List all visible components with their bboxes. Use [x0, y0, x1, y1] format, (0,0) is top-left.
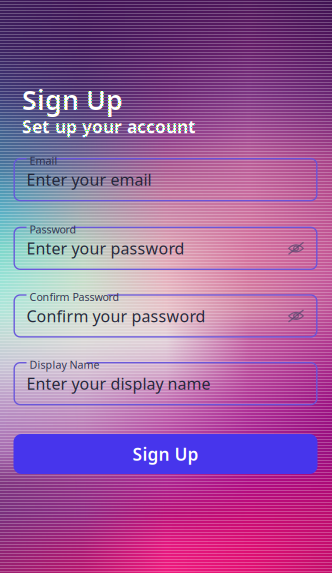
staticText: Display Name	[29, 357, 99, 372]
button[interactable]: Enter your display name	[13, 362, 317, 405]
staticText: Enter your display name	[26, 373, 210, 394]
button[interactable]: Enter your password	[13, 227, 317, 270]
staticText: Sign Up	[132, 442, 198, 465]
staticText: Sign Up	[22, 82, 123, 117]
staticText: Confirm Password	[29, 290, 119, 304]
staticText: Email	[29, 153, 57, 168]
staticText: Enter your email	[26, 169, 151, 190]
button[interactable]: Enter your email	[13, 158, 317, 201]
staticText: Set up your account	[22, 115, 196, 138]
button[interactable]: Confirm your password	[13, 294, 317, 338]
staticText: Confirm your password	[26, 305, 205, 326]
button[interactable]: Sign Up	[13, 434, 317, 474]
staticText: Enter your password	[26, 238, 184, 259]
staticText: Password	[29, 222, 76, 236]
